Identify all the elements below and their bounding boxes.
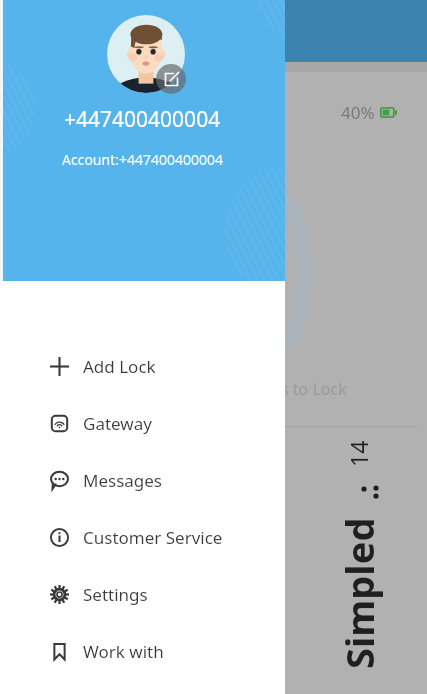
staticText: 40%	[341, 101, 375, 124]
staticText: Settings	[83, 583, 148, 606]
staticText: Simpled	[333, 517, 385, 669]
staticText: s to Lock	[281, 378, 347, 400]
staticText: Work with	[83, 640, 164, 663]
button[interactable]: Close navigation drawer	[0, 0, 427, 694]
staticText: 14	[343, 440, 374, 467]
staticText: Customer Service	[83, 526, 223, 549]
button[interactable]: Customer Service	[0, 509, 285, 566]
button[interactable]: Add Lock	[0, 338, 285, 395]
button[interactable]: Edit profile	[156, 64, 186, 94]
button[interactable]: Gateway	[0, 395, 285, 452]
staticText: Add Lock	[83, 355, 156, 378]
staticText: Messages	[83, 469, 163, 492]
staticText: Gateway	[83, 412, 152, 435]
staticText: +447400400004	[64, 105, 221, 134]
button[interactable]: Messages	[0, 452, 285, 509]
button[interactable]: Settings	[0, 566, 285, 623]
staticText: Account:+447400400004	[62, 150, 224, 169]
button[interactable]: Work with	[0, 623, 285, 680]
